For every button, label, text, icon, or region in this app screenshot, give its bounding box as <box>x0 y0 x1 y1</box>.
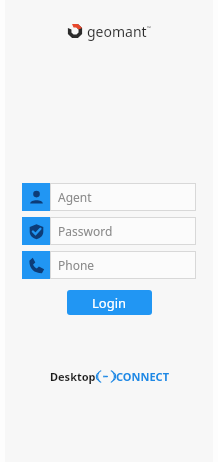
staticText: ™ <box>147 25 151 32</box>
button[interactable]: Agent <box>22 183 196 211</box>
staticText: Login <box>92 294 127 312</box>
other: Phone <box>22 251 50 279</box>
other: Agent <box>22 183 50 211</box>
staticText: Agent <box>58 189 92 205</box>
staticText: Phone <box>58 257 95 273</box>
other: Password <box>22 217 50 245</box>
staticText: Desktop <box>50 369 96 384</box>
button[interactable]: Password <box>22 217 196 245</box>
staticText: geomant <box>87 22 147 41</box>
button[interactable]: Phone <box>22 251 196 279</box>
staticText: CONNECT <box>116 369 169 384</box>
staticText: Password <box>58 223 113 239</box>
button[interactable]: Login <box>67 290 152 315</box>
